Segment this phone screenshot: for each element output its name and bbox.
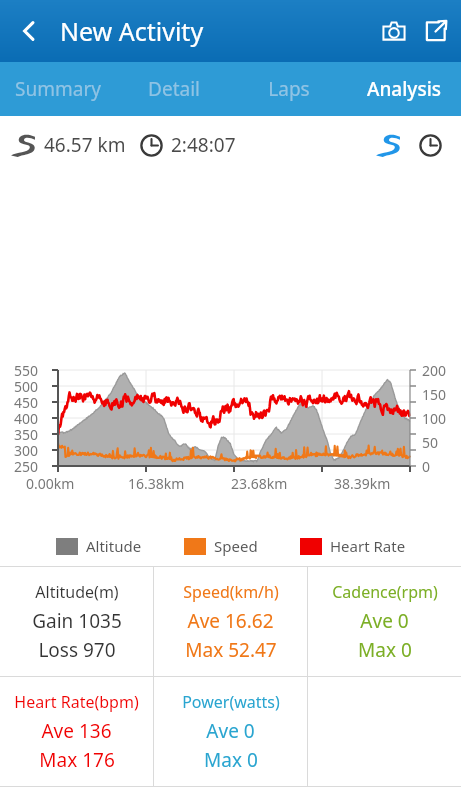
staticText: Max 176 — [39, 747, 115, 773]
staticText: Gain 1035 — [32, 608, 122, 634]
staticText: Max 0 — [204, 747, 258, 773]
staticText: Analysis — [367, 76, 441, 102]
staticText: Ave 0 — [206, 718, 255, 744]
button[interactable]: Speed(km/h) — [154, 567, 307, 676]
staticText: 0 — [422, 457, 431, 476]
staticText: 450 — [14, 393, 39, 412]
staticText: Heart Rate(bpm) — [14, 691, 139, 713]
button[interactable]: Share — [415, 10, 457, 52]
staticText: 23.68km — [231, 474, 288, 493]
button[interactable]: Laps — [231, 62, 346, 116]
staticText: Speed(km/h) — [183, 581, 279, 603]
staticText: Ave 16.62 — [187, 608, 274, 634]
staticText: Power(watts) — [182, 691, 280, 713]
staticText: 2:48:07 — [171, 132, 236, 158]
staticText: Heart Rate — [330, 536, 406, 556]
staticText: Laps — [268, 76, 310, 102]
staticText: 300 — [14, 441, 39, 460]
button[interactable]: Altitude(m) — [0, 567, 153, 676]
staticText: Loss 970 — [38, 637, 116, 663]
staticText: 250 — [14, 457, 39, 476]
staticText: 38.39km — [334, 474, 391, 493]
staticText: Altitude — [86, 536, 142, 556]
staticText: 150 — [422, 385, 447, 404]
staticText: 350 — [14, 425, 39, 444]
button[interactable]: Power(watts) — [154, 677, 307, 786]
button[interactable]: Distance axis — [371, 128, 405, 162]
button[interactable]: Capture screenshot — [373, 10, 415, 52]
staticText: Ave 0 — [360, 608, 409, 634]
staticText: 50 — [422, 433, 439, 452]
staticText: Summary — [15, 76, 101, 102]
staticText: 0.00km — [26, 474, 75, 493]
button[interactable]: Heart Rate(bpm) — [0, 677, 153, 786]
staticText: 400 — [14, 409, 39, 428]
staticText: 550 — [14, 361, 39, 380]
button[interactable]: Analysis — [346, 62, 461, 116]
staticText: Max 52.47 — [185, 637, 277, 663]
button[interactable]: Time axis — [413, 128, 447, 162]
button[interactable]: Summary — [0, 62, 116, 116]
staticText: 100 — [422, 409, 447, 428]
staticText: 46.57 km — [44, 132, 126, 158]
button[interactable]: Detail — [116, 62, 231, 116]
staticText: 16.38km — [128, 474, 185, 493]
staticText: Max 0 — [358, 637, 412, 663]
staticText: Speed — [214, 536, 258, 556]
button[interactable]: Back — [6, 8, 52, 54]
staticText: Cadence(rpm) — [332, 581, 438, 603]
button[interactable]: Cadence(rpm) — [308, 567, 461, 676]
staticText: New Activity — [60, 14, 204, 48]
staticText: 200 — [422, 361, 447, 380]
staticText: Altitude(m) — [35, 581, 119, 603]
staticText: Ave 136 — [41, 718, 112, 744]
staticText: Detail — [148, 76, 200, 102]
staticText: 500 — [14, 377, 39, 396]
